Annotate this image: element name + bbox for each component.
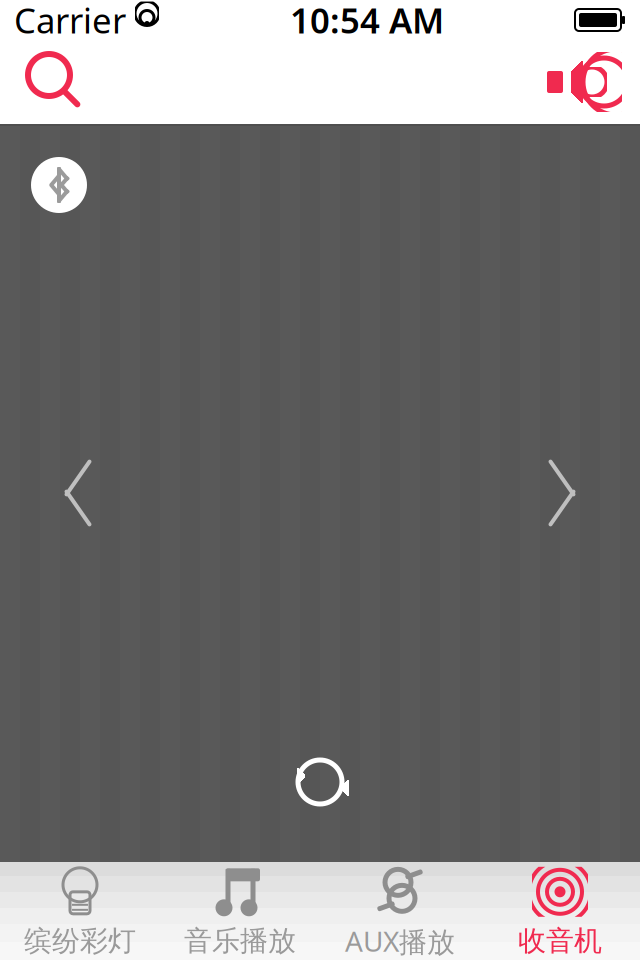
staticText: AUX播放 (345, 922, 455, 960)
button[interactable]: Volume (536, 40, 632, 124)
button[interactable]: 音乐播放 (160, 862, 320, 960)
staticText: 缤纷彩灯 (24, 924, 136, 958)
button[interactable]: AUX播放 (320, 862, 480, 960)
button[interactable]: 缤纷彩灯 (0, 862, 160, 960)
button[interactable]: Next station (514, 438, 610, 548)
button[interactable]: Search (8, 40, 104, 124)
staticText: 音乐播放 (184, 924, 296, 958)
button[interactable]: Previous station (30, 438, 126, 548)
staticText: 10:54 AM (290, 0, 444, 43)
button[interactable]: 收音机 (480, 862, 640, 960)
button[interactable]: Scan stations (274, 736, 366, 828)
staticText: Carrier (14, 0, 126, 43)
button[interactable]: Bluetooth (28, 154, 90, 216)
staticText: 收音机 (518, 924, 602, 958)
